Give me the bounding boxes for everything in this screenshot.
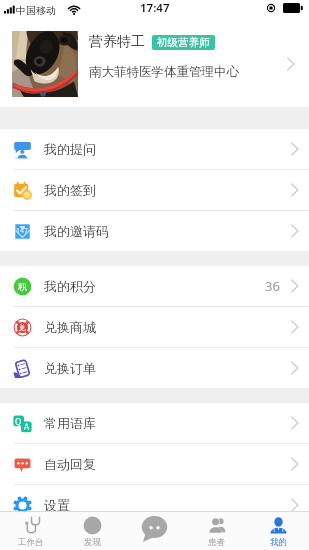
staticText: 我的签到 <box>44 182 96 198</box>
staticText: 设置 <box>44 497 70 513</box>
staticText: 营养特工 <box>89 33 145 51</box>
staticText: 我的邀请码 <box>44 223 109 239</box>
button[interactable]: Q <box>0 403 309 443</box>
staticText: 初级营养师 <box>157 36 210 49</box>
button[interactable]: 我的 <box>247 512 309 550</box>
button[interactable]: 营养特工 <box>0 20 309 107</box>
staticText: 中国移动 <box>16 4 56 17</box>
staticText: 发现 <box>84 537 101 548</box>
staticText: 兑换商城 <box>44 319 96 335</box>
button[interactable]: 我的签到 <box>0 170 309 210</box>
staticText: 兑换订单 <box>44 360 96 376</box>
button[interactable]: 发现 <box>61 512 123 550</box>
button[interactable]: 患者 <box>185 512 247 550</box>
staticText: 南大菲特医学体重管理中心 <box>89 64 239 80</box>
button[interactable]: 工作台 <box>0 512 61 550</box>
staticText: 兑 <box>19 323 26 332</box>
staticText: Q <box>15 416 22 427</box>
staticText: 常用语库 <box>44 415 96 431</box>
staticText: 17:47 <box>140 0 170 16</box>
button[interactable]: 积 <box>0 266 309 306</box>
staticText: 积 <box>18 281 27 292</box>
button[interactable]: 兑换订单 <box>0 348 309 388</box>
button[interactable]: Messages <box>123 512 185 550</box>
staticText: A <box>24 421 30 432</box>
staticText: 36 <box>265 277 280 295</box>
staticText: 自动回复 <box>44 456 96 472</box>
staticText: 工作台 <box>18 537 44 548</box>
button[interactable]: 设置 <box>0 485 309 525</box>
button[interactable]: 自动回复 <box>0 444 309 484</box>
button[interactable]: 147 <box>0 211 309 251</box>
staticText: 我的提问 <box>44 141 96 157</box>
button[interactable]: 我的提问 <box>0 129 309 169</box>
staticText: 147 <box>16 226 29 236</box>
button[interactable]: 兑 <box>0 307 309 347</box>
staticText: 患者 <box>208 537 225 548</box>
staticText: 我的 <box>270 537 287 548</box>
staticText: 我的积分 <box>44 278 96 294</box>
